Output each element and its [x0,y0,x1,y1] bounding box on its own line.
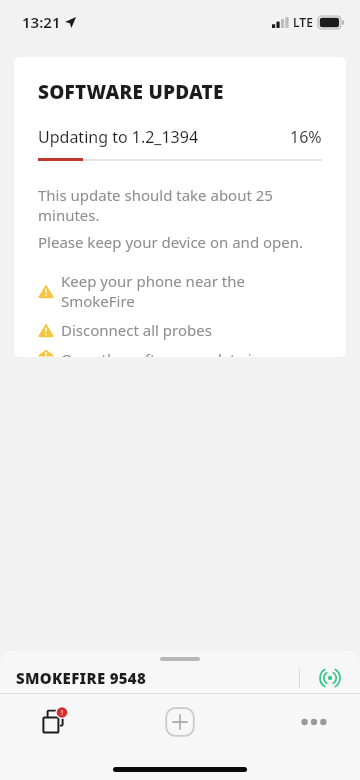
staticText: Disconnect all probes [61,320,212,340]
button[interactable]: More options [292,700,336,744]
staticText: Keep your phone near the SmokeFire [61,271,322,311]
staticText: 13:21 [22,12,61,32]
staticText: SMOKEFIRE 9548 [16,668,299,688]
staticText: Please keep your device on and open. [38,232,304,252]
staticText: This update should take about 25 minutes… [38,185,322,225]
staticText: SOFTWARE UPDATE [38,79,224,105]
button[interactable]: SMOKEFIRE 9548 [0,663,360,693]
button[interactable]: Add device [158,700,202,744]
staticText: LTE [293,14,313,30]
button[interactable]: Devices [34,700,78,744]
other: Connected [318,666,342,690]
staticText: 16% [290,126,322,148]
staticText: Once the software update is complete, [61,349,322,357]
staticText: Updating to 1.2_1394 [38,126,290,148]
